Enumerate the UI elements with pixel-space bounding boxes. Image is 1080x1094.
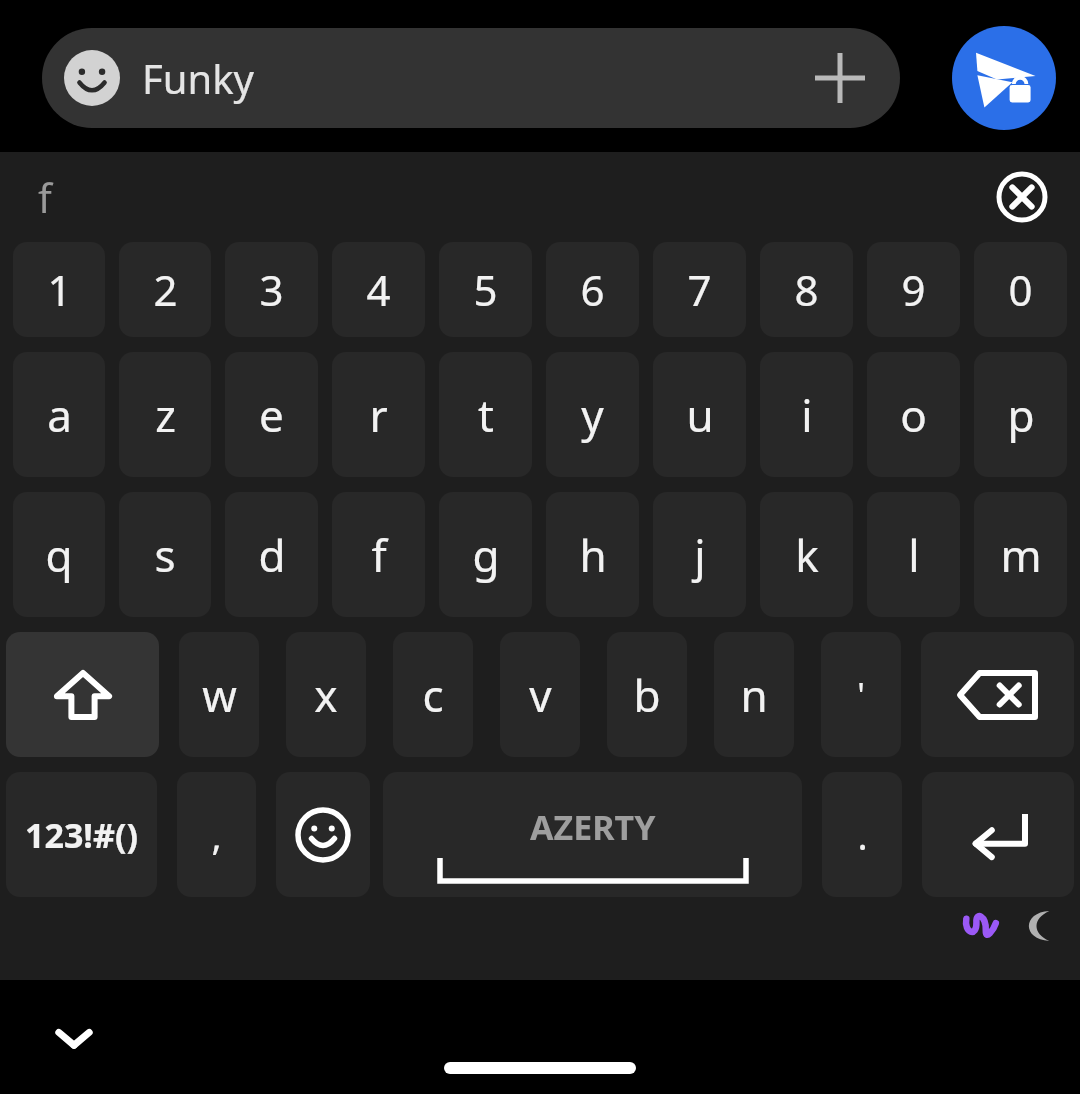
staticText: 9 — [901, 261, 926, 318]
button[interactable]: o — [867, 352, 960, 477]
button[interactable]: 9 — [867, 242, 960, 337]
staticText: 2 — [153, 261, 178, 318]
staticText: m — [1000, 525, 1042, 585]
staticText: 0 — [1008, 261, 1033, 318]
staticText: s — [154, 525, 176, 585]
staticText: w — [202, 665, 237, 725]
staticText: g — [472, 525, 500, 585]
button[interactable]: 8 — [760, 242, 853, 337]
button[interactable]: k — [760, 492, 853, 617]
staticText: v — [529, 665, 552, 725]
button[interactable]: Handwriting — [958, 904, 1002, 948]
staticText: 7 — [687, 261, 712, 318]
button[interactable]: t — [439, 352, 532, 477]
button[interactable]: e — [225, 352, 318, 477]
button[interactable]: p — [974, 352, 1067, 477]
staticText: ' — [857, 672, 865, 718]
staticText: k — [795, 525, 819, 585]
button[interactable]: 5 — [439, 242, 532, 337]
staticText: 5 — [473, 261, 498, 318]
staticText: d — [258, 525, 286, 585]
button[interactable]: h — [546, 492, 639, 617]
staticText: . — [857, 809, 868, 861]
button[interactable]: y — [546, 352, 639, 477]
button[interactable]: u — [653, 352, 746, 477]
button[interactable]: f — [332, 492, 425, 617]
button[interactable]: 0 — [974, 242, 1067, 337]
staticText: c — [422, 665, 444, 725]
button[interactable]: 1 — [13, 242, 105, 337]
staticText: f — [38, 170, 52, 224]
staticText: e — [259, 385, 284, 445]
button[interactable]: j — [653, 492, 746, 617]
staticText: q — [45, 525, 73, 585]
staticText: 123!#() — [25, 812, 138, 858]
button[interactable]: s — [119, 492, 211, 617]
button[interactable]: Backspace — [921, 632, 1074, 757]
staticText: 3 — [259, 261, 284, 318]
staticText: , — [211, 809, 222, 861]
button[interactable]: Close suggestions — [986, 161, 1058, 233]
button[interactable]: 4 — [332, 242, 425, 337]
staticText: y — [581, 385, 604, 445]
staticText: a — [47, 385, 72, 445]
button[interactable]: Enter — [922, 772, 1074, 897]
button[interactable]: 6 — [546, 242, 639, 337]
staticText: l — [908, 525, 920, 585]
staticText: z — [155, 385, 176, 445]
staticText: h — [579, 525, 607, 585]
button[interactable]: ' — [821, 632, 901, 757]
button[interactable]: . — [822, 772, 902, 897]
button[interactable]: m — [974, 492, 1067, 617]
button[interactable]: x — [286, 632, 366, 757]
button[interactable]: 3 — [225, 242, 318, 337]
button[interactable]: Emoji — [276, 772, 370, 897]
staticText: i — [801, 385, 813, 445]
button[interactable]: v — [500, 632, 580, 757]
button[interactable]: b — [607, 632, 687, 757]
button[interactable]: n — [714, 632, 794, 757]
button[interactable]: 2 — [119, 242, 211, 337]
button[interactable]: 7 — [653, 242, 746, 337]
button[interactable]: i — [760, 352, 853, 477]
staticText: o — [900, 385, 927, 445]
staticText: t — [478, 385, 494, 445]
button[interactable]: l — [867, 492, 960, 617]
button[interactable]: c — [393, 632, 473, 757]
button[interactable]: w — [179, 632, 259, 757]
button[interactable]: Shift — [6, 632, 159, 757]
button[interactable]: Add attachment — [802, 40, 878, 116]
button[interactable]: z — [119, 352, 211, 477]
button[interactable]: Funky — [42, 28, 900, 128]
button[interactable]: , — [177, 772, 256, 897]
staticText: b — [633, 665, 661, 725]
staticText: 1 — [47, 261, 72, 318]
button[interactable]: f — [24, 162, 66, 232]
staticText: Funky — [142, 51, 254, 105]
staticText: p — [1007, 385, 1035, 445]
button[interactable]: a — [13, 352, 105, 477]
button[interactable]: Send securely — [952, 26, 1056, 130]
staticText: 4 — [366, 261, 391, 318]
staticText: AZERTY — [530, 804, 656, 850]
staticText: 6 — [580, 261, 605, 318]
staticText: j — [694, 525, 706, 585]
staticText: 8 — [794, 261, 819, 318]
button[interactable]: g — [439, 492, 532, 617]
button[interactable]: Space — [383, 772, 802, 897]
button[interactable]: 123!#() — [6, 772, 157, 897]
staticText: r — [369, 385, 388, 445]
button[interactable]: d — [225, 492, 318, 617]
button[interactable]: r — [332, 352, 425, 477]
button[interactable]: q — [13, 492, 105, 617]
staticText: f — [371, 525, 387, 585]
staticText: u — [686, 385, 714, 445]
button[interactable]: Hide keyboard — [38, 1002, 110, 1074]
staticText: n — [740, 665, 768, 725]
staticText: x — [314, 665, 338, 725]
button[interactable]: Night mode — [1012, 904, 1056, 948]
